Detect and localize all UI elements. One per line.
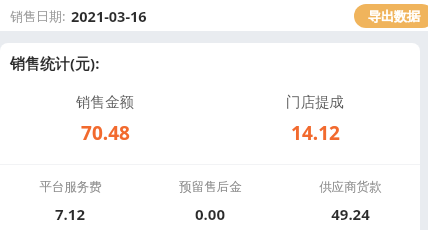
- button[interactable]: 门店提成: [210, 93, 420, 146]
- button[interactable]: 导出数据: [354, 4, 428, 28]
- button[interactable]: 平台服务费: [0, 179, 140, 224]
- staticText: 销售金额: [76, 93, 134, 111]
- staticText: 预留售后金: [179, 179, 242, 195]
- staticText: 销售统计(元):: [10, 53, 100, 73]
- staticText: 0.00: [195, 204, 225, 224]
- staticText: 供应商货款: [319, 179, 382, 195]
- staticText: 7.12: [55, 204, 85, 224]
- staticText: 70.48: [81, 120, 130, 146]
- button[interactable]: 预留售后金: [140, 179, 280, 224]
- button[interactable]: 供应商货款: [280, 179, 420, 224]
- staticText: 平台服务费: [39, 179, 102, 195]
- staticText: 导出数据: [368, 8, 420, 24]
- staticText: 销售日期:: [10, 7, 66, 25]
- staticText: 49.24: [331, 204, 370, 224]
- staticText: 门店提成: [286, 93, 344, 111]
- button[interactable]: 销售金额: [0, 93, 210, 146]
- staticText: 14.12: [291, 120, 340, 146]
- staticText: 2021-03-16: [71, 6, 147, 26]
